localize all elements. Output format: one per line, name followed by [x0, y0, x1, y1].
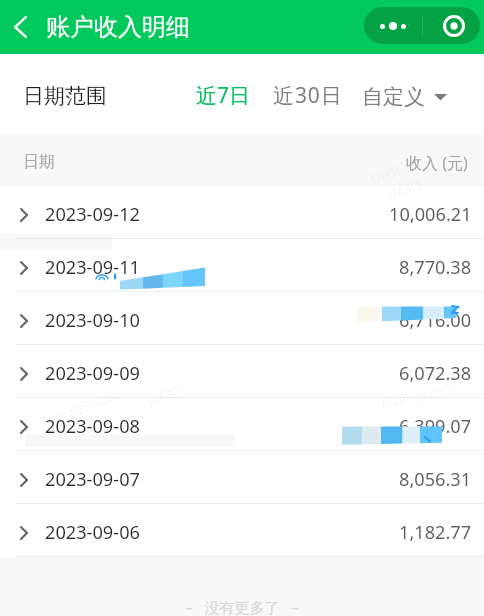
staticText: AQ8t	[378, 385, 413, 413]
button[interactable]: 2023-09-11	[0, 239, 484, 292]
button[interactable]: 2023-09-10	[0, 292, 484, 345]
staticText: 2023-09-08	[45, 414, 140, 439]
staticText: 10,006.21	[389, 202, 472, 227]
button[interactable]: Back	[4, 8, 37, 46]
button[interactable]: 自定义	[354, 74, 455, 120]
staticText: 收入 (元)	[406, 152, 468, 174]
staticText: 8,056.31	[399, 467, 472, 492]
staticText: 自定义	[362, 84, 425, 110]
staticText: 2023-09-12	[45, 202, 140, 227]
staticText: 日期	[23, 152, 55, 172]
button[interactable]: 2023-09-07	[0, 451, 484, 504]
button[interactable]: 2023-09-12	[0, 186, 484, 239]
button[interactable]: 2023-09-08	[0, 398, 484, 451]
staticText: – 没有更多了 –	[185, 597, 299, 616]
staticText: 2023-09-09	[45, 361, 140, 386]
staticText: 1,182.77	[399, 520, 472, 545]
button[interactable]: More options	[364, 7, 422, 44]
staticText: 近7日	[196, 81, 251, 110]
staticText: 6,399.07	[399, 414, 472, 439]
button[interactable]: 近7日	[188, 71, 259, 120]
staticText: yM3Q	[383, 174, 424, 204]
staticText: 2023-09-06	[45, 520, 140, 545]
staticText: 6,716.00	[399, 308, 472, 333]
staticText: 8,770.38	[399, 255, 472, 280]
staticText: mzQ5	[413, 379, 453, 409]
button[interactable]: 2023-09-09	[0, 345, 484, 398]
button[interactable]: 2023-09-06	[0, 504, 484, 557]
staticText: 近30日	[273, 81, 343, 110]
staticText: 2023-09-11	[45, 255, 140, 280]
staticText: yM3Q	[144, 380, 185, 410]
staticText: 日期范围	[23, 83, 107, 109]
staticText: 2023-09-07	[45, 467, 140, 492]
button[interactable]: Close	[422, 7, 480, 44]
staticText: mzQ5AQ8t	[53, 385, 122, 425]
staticText: 2023-09-10	[45, 308, 140, 333]
button[interactable]: 近30日	[265, 71, 351, 120]
staticText: 6,072.38	[399, 361, 472, 386]
staticText: 账户收入明细	[46, 12, 190, 42]
